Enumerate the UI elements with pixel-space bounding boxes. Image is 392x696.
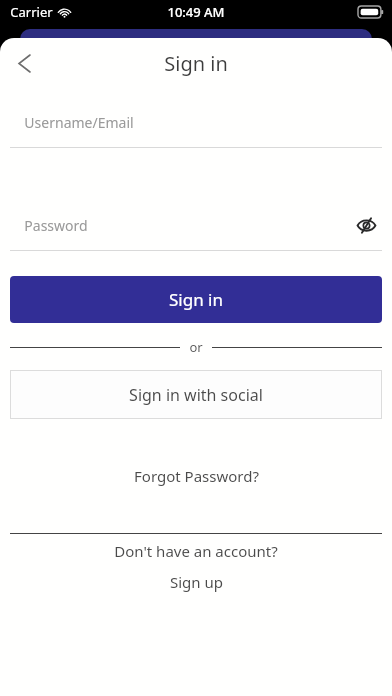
button[interactable]: Show password [350, 209, 382, 241]
staticText: Sign up [170, 572, 223, 592]
staticText: Sign in [169, 288, 223, 311]
staticText: Username/Email [24, 113, 134, 132]
button[interactable]: Sign in with social [10, 370, 382, 419]
staticText: Forgot Password? [134, 466, 259, 486]
staticText: or [189, 338, 203, 356]
button[interactable]: Forgot Password? [124, 461, 269, 491]
button[interactable]: Sign in [10, 276, 382, 323]
staticText: 10:49 AM [167, 3, 225, 21]
button[interactable]: Password [10, 209, 382, 241]
button[interactable]: Sign up [158, 570, 235, 594]
staticText: Password [24, 216, 88, 235]
button[interactable]: Username/Email [10, 106, 382, 138]
staticText: Sign in [164, 50, 228, 77]
staticText: Sign in with social [129, 384, 263, 406]
button[interactable]: Back [4, 43, 44, 83]
staticText: Don't have an account? [114, 541, 278, 561]
staticText: Carrier [10, 3, 53, 21]
